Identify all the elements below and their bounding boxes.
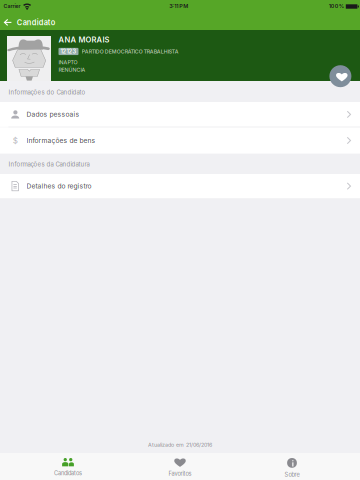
staticText: Dados pessoais <box>26 110 79 118</box>
staticText: 100% <box>329 3 344 9</box>
staticText: Candidatos <box>54 470 82 477</box>
button[interactable]: Candidato <box>0 15 62 29</box>
staticText: INAPTO <box>58 59 77 66</box>
staticText: Carrier <box>3 3 20 9</box>
staticText: Favoritos <box>168 470 191 477</box>
staticText: 12123 <box>60 48 76 55</box>
staticText: Informações da Candidatura <box>8 161 89 168</box>
staticText: Atualizado em 21/06/2016 <box>148 441 212 448</box>
staticText: RENÚNCIA <box>58 66 85 73</box>
button[interactable]: $ <box>0 127 360 154</box>
button[interactable]: Detalhes do registro <box>0 174 360 198</box>
staticText: ANA MORAIS <box>58 35 109 44</box>
staticText: PARTIDO DEMOCRÁTICO TRABALHISTA <box>82 48 179 55</box>
staticText: Informações de bens <box>26 136 95 145</box>
button[interactable]: Dados pessoais <box>0 102 360 127</box>
staticText: 3:11 PM <box>169 3 188 9</box>
staticText: Detalhes do registro <box>26 182 91 190</box>
button[interactable]: Candidatos <box>12 453 124 480</box>
staticText: $ <box>13 136 18 145</box>
staticText: Sobre <box>284 471 299 478</box>
button[interactable]: Sobre <box>236 453 348 480</box>
staticText: Candidato <box>17 18 56 27</box>
button[interactable]: Favoritos <box>124 453 236 480</box>
staticText: Informações do Candidato <box>8 89 85 96</box>
button[interactable]: Favoritar <box>329 65 351 87</box>
